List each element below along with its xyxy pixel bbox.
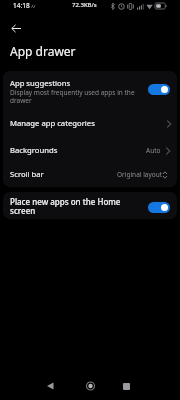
button[interactable] bbox=[11, 24, 22, 33]
button[interactable] bbox=[118, 382, 134, 392]
button[interactable] bbox=[148, 202, 170, 213]
staticText: Manage app categories bbox=[10, 118, 95, 128]
button[interactable] bbox=[43, 382, 57, 392]
button[interactable]: Place new apps on the Home screen bbox=[3, 192, 177, 219]
staticText: Place new apps on the Home screen bbox=[10, 196, 121, 217]
button[interactable]: Scroll bar bbox=[0, 162, 180, 187]
button[interactable] bbox=[82, 381, 99, 392]
staticText: Display most frequently used apps in the… bbox=[10, 88, 135, 105]
button[interactable]: App suggestions bbox=[0, 72, 180, 112]
staticText: 72.3KB/s bbox=[72, 1, 97, 9]
staticText: App suggestions bbox=[10, 78, 71, 88]
button[interactable]: Manage app categories bbox=[0, 112, 180, 137]
staticText: Auto bbox=[146, 146, 161, 155]
staticText: App drawer bbox=[10, 43, 76, 59]
button[interactable] bbox=[148, 84, 170, 95]
staticText: Backgrounds bbox=[10, 145, 58, 155]
staticText: 14:18 bbox=[13, 1, 30, 10]
button[interactable]: Backgrounds bbox=[0, 137, 180, 162]
staticText: Original layout bbox=[117, 170, 163, 179]
staticText: Scroll bar bbox=[10, 169, 44, 179]
